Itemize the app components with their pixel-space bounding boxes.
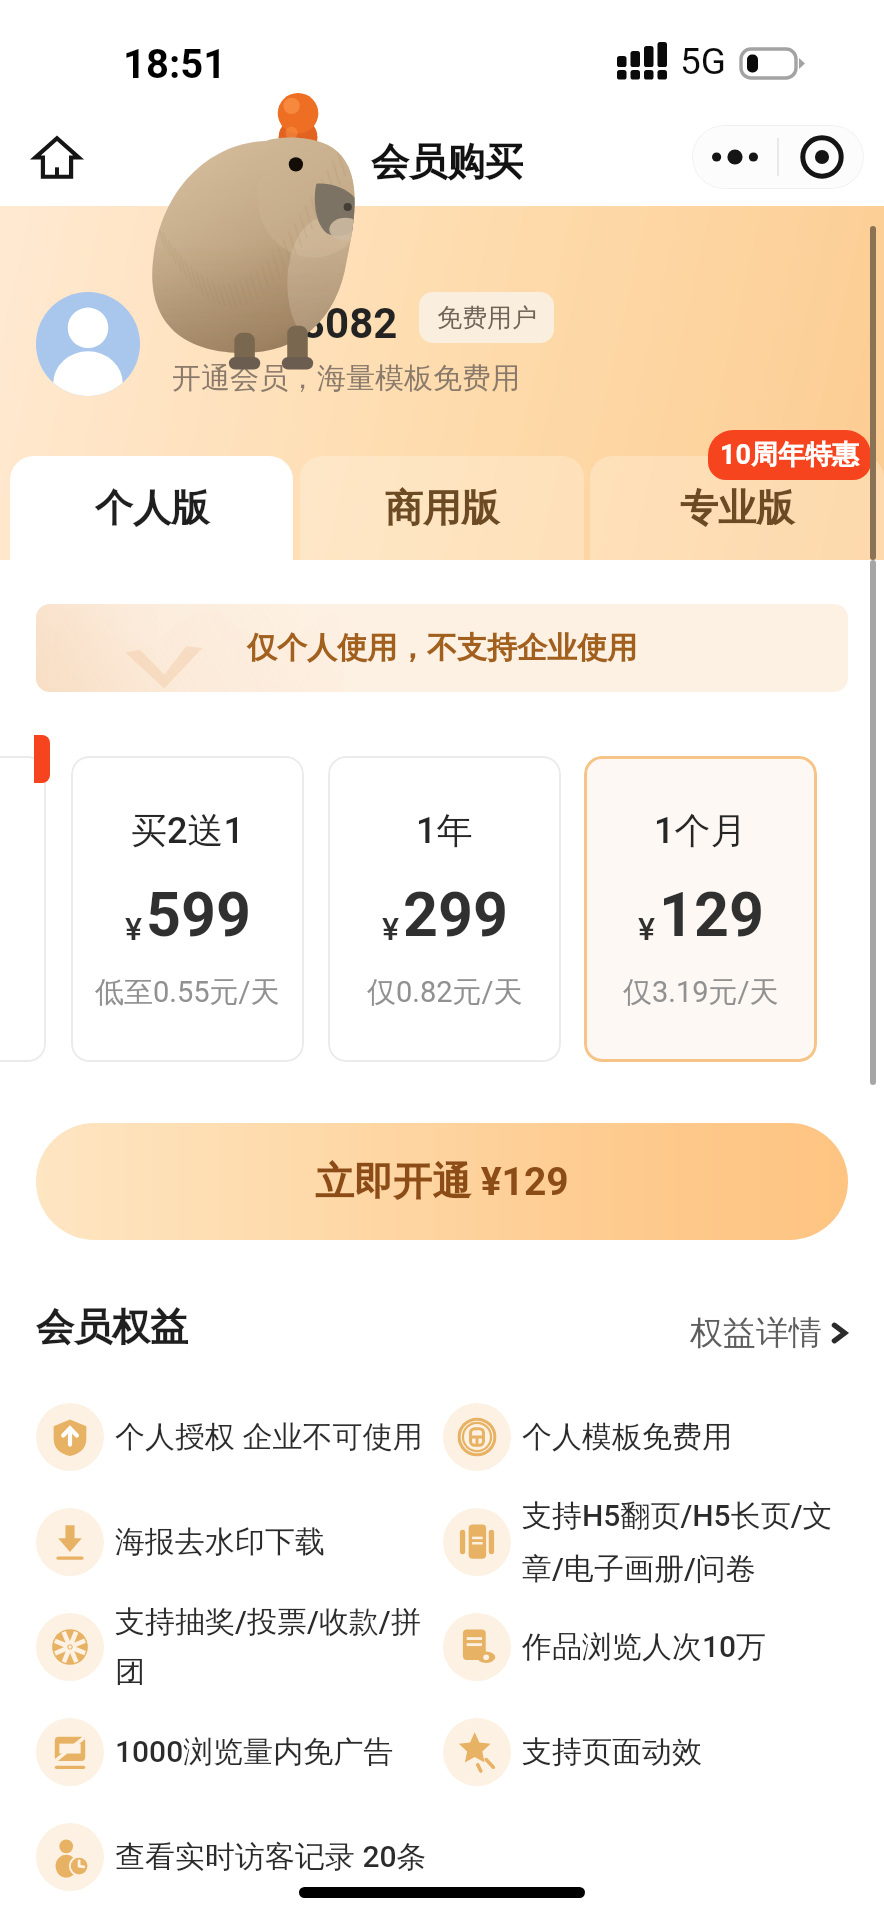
button[interactable]: Home	[18, 118, 96, 196]
button[interactable]: 支持页面动效	[443, 1699, 845, 1804]
staticText: 开通会员，海量模板免费用	[172, 360, 520, 397]
staticText: 1个月	[654, 808, 747, 853]
staticText: 支持抽奖/投票/收款/拼团	[115, 1603, 436, 1691]
staticText: ¥	[125, 910, 143, 948]
button[interactable]: 专业版	[590, 456, 884, 560]
staticText: 129	[659, 879, 764, 950]
button[interactable]: Close mini program	[779, 125, 864, 189]
button[interactable]: 海报去水印下载	[36, 1489, 436, 1594]
staticText: 专业版	[680, 484, 794, 532]
staticText: 用户8082	[217, 298, 398, 351]
staticText: 立即开通 ¥129	[315, 1157, 569, 1206]
staticText: 查看实时访客记录 20条	[115, 1838, 427, 1876]
staticText: 支持页面动效	[522, 1733, 702, 1771]
button[interactable]: More options	[692, 125, 777, 189]
button[interactable]: 1年	[328, 756, 561, 1062]
button[interactable]: 个人版	[10, 456, 293, 560]
button[interactable]: 个人授权 企业不可使用	[36, 1384, 436, 1489]
staticText: 商用版	[385, 484, 499, 532]
staticText: 仅个人使用，不支持企业使用	[247, 629, 637, 667]
staticText: 支持H5翻页/H5长页/文章/电子画册/问卷	[522, 1497, 845, 1587]
staticText: 个人授权 企业不可使用	[115, 1418, 423, 1456]
staticText: 买2送1	[131, 808, 244, 853]
button[interactable]: 买2送1	[71, 756, 304, 1062]
button[interactable]: 查看实时访客记录 20条	[36, 1804, 436, 1909]
button[interactable]: 作品浏览人次10万	[443, 1594, 845, 1699]
staticText: 免费用户	[437, 302, 537, 333]
staticText: 18:51	[123, 41, 227, 88]
staticText: 权益详情	[690, 1312, 822, 1354]
button[interactable]: 支持抽奖/投票/收款/拼团	[36, 1594, 436, 1699]
staticText: 1年	[416, 808, 473, 853]
staticText: 低至0.55元/天	[95, 974, 280, 1011]
staticText: 个人模板免费用	[522, 1418, 732, 1456]
button[interactable]	[0, 756, 46, 1062]
staticText: 个人版	[95, 484, 209, 532]
button[interactable]: 权益详情	[690, 1312, 852, 1354]
button[interactable]: 1000浏览量内免广告	[36, 1699, 436, 1804]
staticText: 仅0.82元/天	[367, 974, 523, 1011]
button[interactable]: 立即开通 ¥129	[36, 1123, 848, 1240]
staticText: 会员购买	[371, 138, 523, 186]
staticText: 299	[403, 879, 508, 950]
staticText: 作品浏览人次10万	[522, 1628, 767, 1666]
staticText: 会员权益	[36, 1303, 188, 1351]
staticText: ¥	[638, 910, 656, 948]
button[interactable]: 支持H5翻页/H5长页/文章/电子画册/问卷	[443, 1489, 845, 1594]
staticText: ¥	[382, 910, 400, 948]
button[interactable]: 商用版	[300, 456, 584, 560]
button[interactable]: 个人模板免费用	[443, 1384, 845, 1489]
staticText: 1000浏览量内免广告	[115, 1733, 394, 1771]
staticText: 5G	[680, 40, 726, 83]
staticText: 10周年特惠	[720, 438, 859, 472]
button[interactable]: 1个月	[584, 756, 817, 1062]
staticText: 海报去水印下载	[115, 1523, 325, 1561]
staticText: 仅3.19元/天	[623, 974, 779, 1011]
staticText: 599	[146, 879, 251, 950]
